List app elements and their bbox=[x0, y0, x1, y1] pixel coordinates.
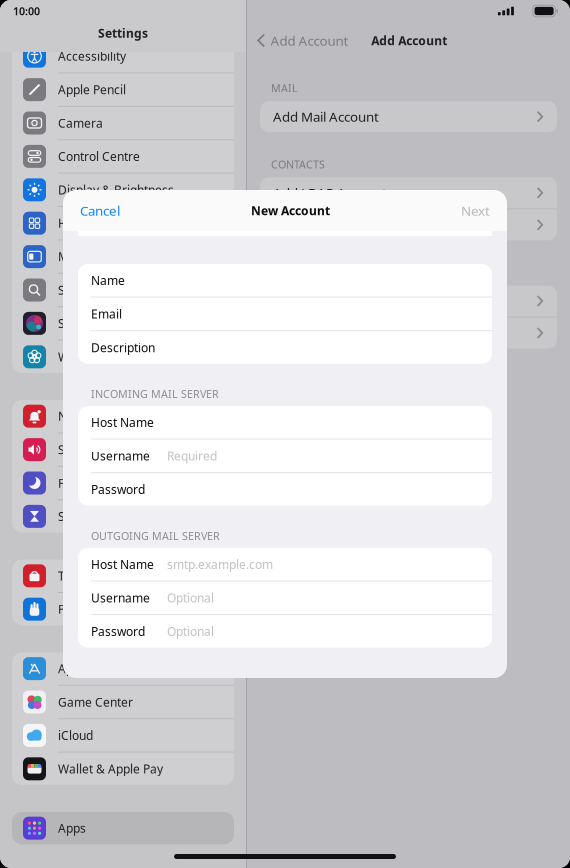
staticText: Control Centre bbox=[58, 148, 140, 164]
button[interactable]: Add CalDAV Account bbox=[260, 285, 557, 316]
staticText: Add Account bbox=[371, 32, 447, 48]
staticText: Username bbox=[91, 590, 150, 606]
staticText: Accessibility bbox=[58, 48, 126, 64]
staticText: Siri bbox=[58, 315, 76, 331]
button[interactable]: Add Mail Account bbox=[260, 101, 557, 132]
button[interactable]: Control Centre bbox=[12, 140, 234, 173]
button[interactable]: Sounds bbox=[12, 433, 234, 466]
staticText: Multitasking & Gestures bbox=[58, 249, 192, 264]
button[interactable]: Multitasking & Gestures bbox=[12, 240, 234, 273]
staticText: Home Screen & App Library bbox=[58, 215, 213, 231]
button[interactable]: Cancel bbox=[80, 191, 136, 230]
staticText: Cancel bbox=[80, 202, 120, 219]
button[interactable]: Wallpaper bbox=[12, 341, 234, 373]
button[interactable]: Touch ID & Passcode bbox=[12, 560, 234, 592]
staticText: Optional bbox=[167, 590, 214, 606]
button[interactable]: Camera bbox=[12, 107, 234, 139]
button[interactable]: Accessibility bbox=[12, 40, 234, 72]
staticText: Focus bbox=[58, 475, 90, 491]
staticText: MAIL bbox=[271, 81, 298, 95]
button[interactable]: Next bbox=[445, 191, 490, 230]
staticText: CONTACTS bbox=[271, 157, 325, 171]
button[interactable]: Search bbox=[12, 274, 234, 306]
button[interactable]: Add CardDAV Account bbox=[260, 209, 557, 240]
staticText: Apple Pencil bbox=[58, 82, 126, 97]
staticText: Notifications bbox=[58, 408, 128, 424]
staticText: Password bbox=[91, 481, 145, 497]
button[interactable]: Home Screen & App Library bbox=[12, 207, 234, 239]
staticText: New Account bbox=[251, 202, 330, 218]
staticText: Privacy & Security bbox=[58, 601, 158, 617]
button[interactable]: Screen Time bbox=[12, 500, 234, 533]
staticText: Game Center bbox=[58, 694, 133, 710]
staticText: Add LDAP Account bbox=[273, 184, 387, 202]
staticText: Display & Brightness bbox=[58, 182, 174, 198]
staticText: Name bbox=[91, 272, 125, 288]
button[interactable]: App Store bbox=[12, 652, 234, 685]
staticText: Add CalDAV Account bbox=[273, 292, 397, 310]
button[interactable]: Game Center bbox=[12, 686, 234, 718]
staticText: Touch ID & Passcode bbox=[58, 568, 175, 584]
button[interactable]: Wallet & Apple Pay bbox=[12, 753, 234, 785]
staticText: Apps bbox=[58, 820, 86, 836]
staticText: Username bbox=[91, 448, 150, 464]
staticText: Camera bbox=[58, 115, 103, 131]
button[interactable]: Add Account bbox=[257, 24, 356, 57]
button[interactable]: Apps bbox=[12, 812, 234, 844]
staticText: Sounds bbox=[58, 442, 99, 457]
staticText: Add Subscribed Calendar bbox=[273, 324, 427, 342]
staticText: Description bbox=[91, 339, 155, 355]
staticText: Screen Time bbox=[58, 508, 128, 524]
button[interactable]: Add LDAP Account bbox=[260, 177, 557, 208]
button[interactable]: Notifications bbox=[12, 400, 234, 432]
staticText: Search bbox=[58, 282, 97, 298]
button[interactable]: Display & Brightness bbox=[12, 174, 234, 206]
staticText: Password bbox=[91, 623, 145, 639]
staticText: Next bbox=[461, 202, 490, 219]
staticText: Add Account bbox=[270, 32, 348, 49]
staticText: Email bbox=[91, 306, 122, 322]
staticText: Wallpaper bbox=[58, 349, 115, 365]
button[interactable]: Privacy & Security bbox=[12, 593, 234, 625]
staticText: OUTGOING MAIL SERVER bbox=[91, 529, 220, 543]
staticText: Host Name bbox=[91, 414, 154, 430]
staticText: Wallet & Apple Pay bbox=[58, 761, 163, 777]
staticText: Host Name bbox=[91, 556, 154, 572]
staticText: INCOMING MAIL SERVER bbox=[91, 387, 219, 401]
staticText: Required bbox=[167, 448, 217, 464]
staticText: smtp.example.com bbox=[167, 556, 273, 572]
staticText: Optional bbox=[167, 623, 214, 639]
staticText: App Store bbox=[58, 661, 113, 676]
staticText: 10:00 bbox=[13, 4, 40, 18]
button[interactable]: Siri bbox=[12, 307, 234, 340]
staticText: Add Mail Account bbox=[273, 108, 379, 125]
button[interactable]: Apple Pencil bbox=[12, 73, 234, 106]
button[interactable]: iCloud bbox=[12, 719, 234, 752]
button[interactable]: Add Subscribed Calendar bbox=[260, 317, 557, 348]
staticText: Settings bbox=[98, 25, 148, 41]
staticText: iCloud bbox=[58, 727, 93, 743]
button[interactable]: Focus bbox=[12, 467, 234, 499]
